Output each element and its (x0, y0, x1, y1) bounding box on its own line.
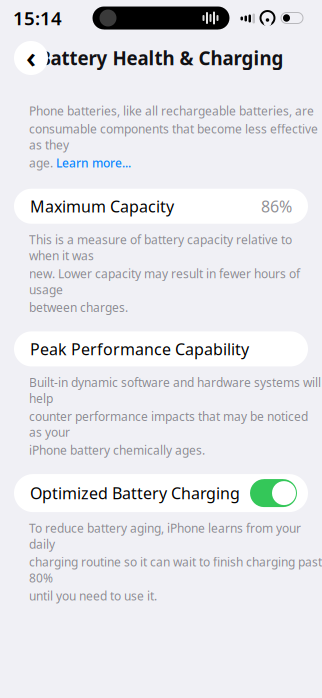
staticText: Maximum Capacity (30, 196, 174, 217)
staticText: Phone batteries, like all rechargeable b… (29, 103, 314, 119)
staticText: 86% (261, 196, 292, 217)
staticText: charging routine so it can wait to finis… (29, 554, 322, 586)
staticText: This is a measure of battery capacity re… (29, 232, 292, 264)
staticText: Built-in dynamic software and hardware s… (29, 374, 321, 406)
button[interactable]: Maximum Capacity (14, 189, 308, 224)
button[interactable]: Optimized Battery Charging (14, 474, 308, 512)
button[interactable]: Back (14, 41, 48, 75)
staticText: 15:14 (13, 6, 62, 30)
staticText: Peak Performance Capability (30, 338, 249, 359)
staticText: iPhone battery chemically ages. (29, 442, 205, 458)
button[interactable]: Learn more... (56, 155, 131, 171)
staticText: consumable components that become less e… (29, 121, 318, 153)
staticText: ‹ (26, 37, 36, 76)
staticText: Optimized Battery Charging (30, 482, 240, 504)
staticText: new. Lower capacity may result in fewer … (29, 266, 300, 297)
staticText: Learn more... (56, 155, 131, 171)
staticText: between charges. (29, 299, 128, 315)
staticText: To reduce battery aging, iPhone learns f… (29, 520, 301, 552)
button[interactable]: Peak Performance Capability (14, 331, 308, 366)
staticText: until you need to use it. (29, 588, 157, 604)
staticText: Battery Health & Charging (38, 46, 283, 70)
staticText: counter performance impacts that may be … (29, 408, 308, 440)
staticText: age. (29, 155, 53, 171)
